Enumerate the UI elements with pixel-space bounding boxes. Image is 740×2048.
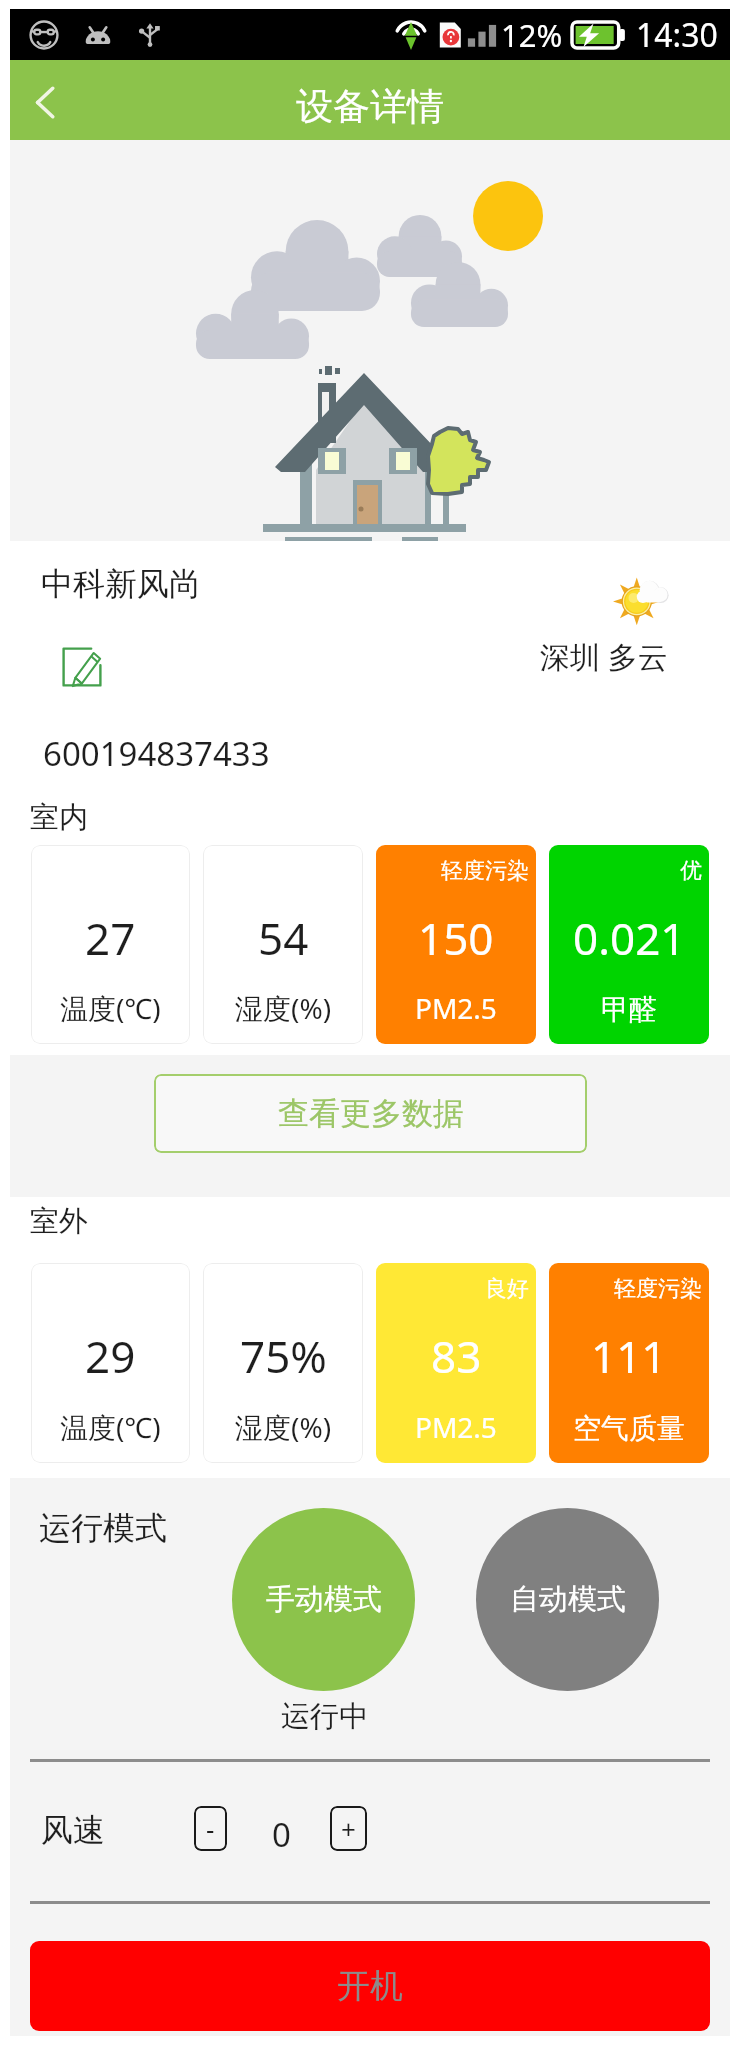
staticText: 29 (85, 1326, 136, 1386)
staticText: 查看更多数据 (278, 1094, 464, 1133)
staticText: 温度(℃) (60, 1408, 161, 1446)
staticText: - (206, 1811, 215, 1846)
staticText: 150 (418, 908, 494, 968)
staticText: 设备详情 (296, 83, 444, 130)
staticText: 111 (591, 1326, 667, 1386)
staticText: 空气质量 (573, 1411, 685, 1446)
staticText: 优 (680, 857, 702, 885)
staticText: 54 (258, 908, 309, 968)
staticText: 自动模式 (510, 1581, 626, 1618)
staticText: 14:30 (636, 13, 718, 57)
staticText: 室内 (30, 799, 88, 836)
staticText: 良好 (485, 1275, 529, 1303)
staticText: 室外 (30, 1203, 88, 1240)
button[interactable]: 查看更多数据 (154, 1074, 587, 1153)
staticText: 深圳 多云 (540, 636, 668, 677)
staticText: 0 (272, 1812, 291, 1857)
button[interactable]: 29 (31, 1263, 190, 1463)
button[interactable]: 优 (549, 845, 709, 1044)
staticText: 83 (431, 1326, 482, 1386)
staticText: 甲醛 (601, 992, 657, 1027)
staticText: 风速 (41, 1810, 105, 1850)
button[interactable]: 轻度污染 (376, 845, 536, 1044)
staticText: PM2.5 (415, 1408, 497, 1446)
staticText: 0.021 (573, 908, 686, 968)
button[interactable]: Edit device name (59, 644, 105, 690)
staticText: 轻度污染 (614, 1275, 702, 1303)
staticText: 轻度污染 (441, 857, 529, 885)
button[interactable]: 自动模式 (476, 1508, 659, 1691)
button[interactable]: Increase fan speed (330, 1806, 367, 1851)
staticText: 手动模式 (266, 1581, 382, 1618)
staticText: 温度(℃) (60, 989, 161, 1027)
button[interactable]: 良好 (376, 1263, 536, 1463)
staticText: 600194837433 (43, 731, 270, 776)
staticText: 27 (85, 908, 136, 968)
staticText: 运行模式 (39, 1508, 167, 1548)
staticText: 中科新风尚 (41, 564, 201, 604)
staticText: 12% (501, 14, 563, 56)
staticText: + (341, 1811, 356, 1846)
staticText: 湿度(%) (235, 989, 332, 1027)
staticText: 75% (240, 1326, 327, 1386)
button[interactable]: Decrease fan speed (194, 1806, 227, 1851)
staticText: 运行中 (281, 1698, 368, 1735)
staticText: 开机 (337, 1965, 403, 2007)
button[interactable]: 开机 (30, 1941, 710, 2031)
staticText: PM2.5 (415, 989, 497, 1027)
button[interactable]: 手动模式 (232, 1508, 415, 1691)
button[interactable]: 75% (203, 1263, 363, 1463)
button[interactable]: 27 (31, 845, 190, 1044)
button[interactable]: Back (10, 60, 80, 140)
button[interactable]: 54 (203, 845, 363, 1044)
button[interactable]: 轻度污染 (549, 1263, 709, 1463)
staticText: 湿度(%) (235, 1408, 332, 1446)
